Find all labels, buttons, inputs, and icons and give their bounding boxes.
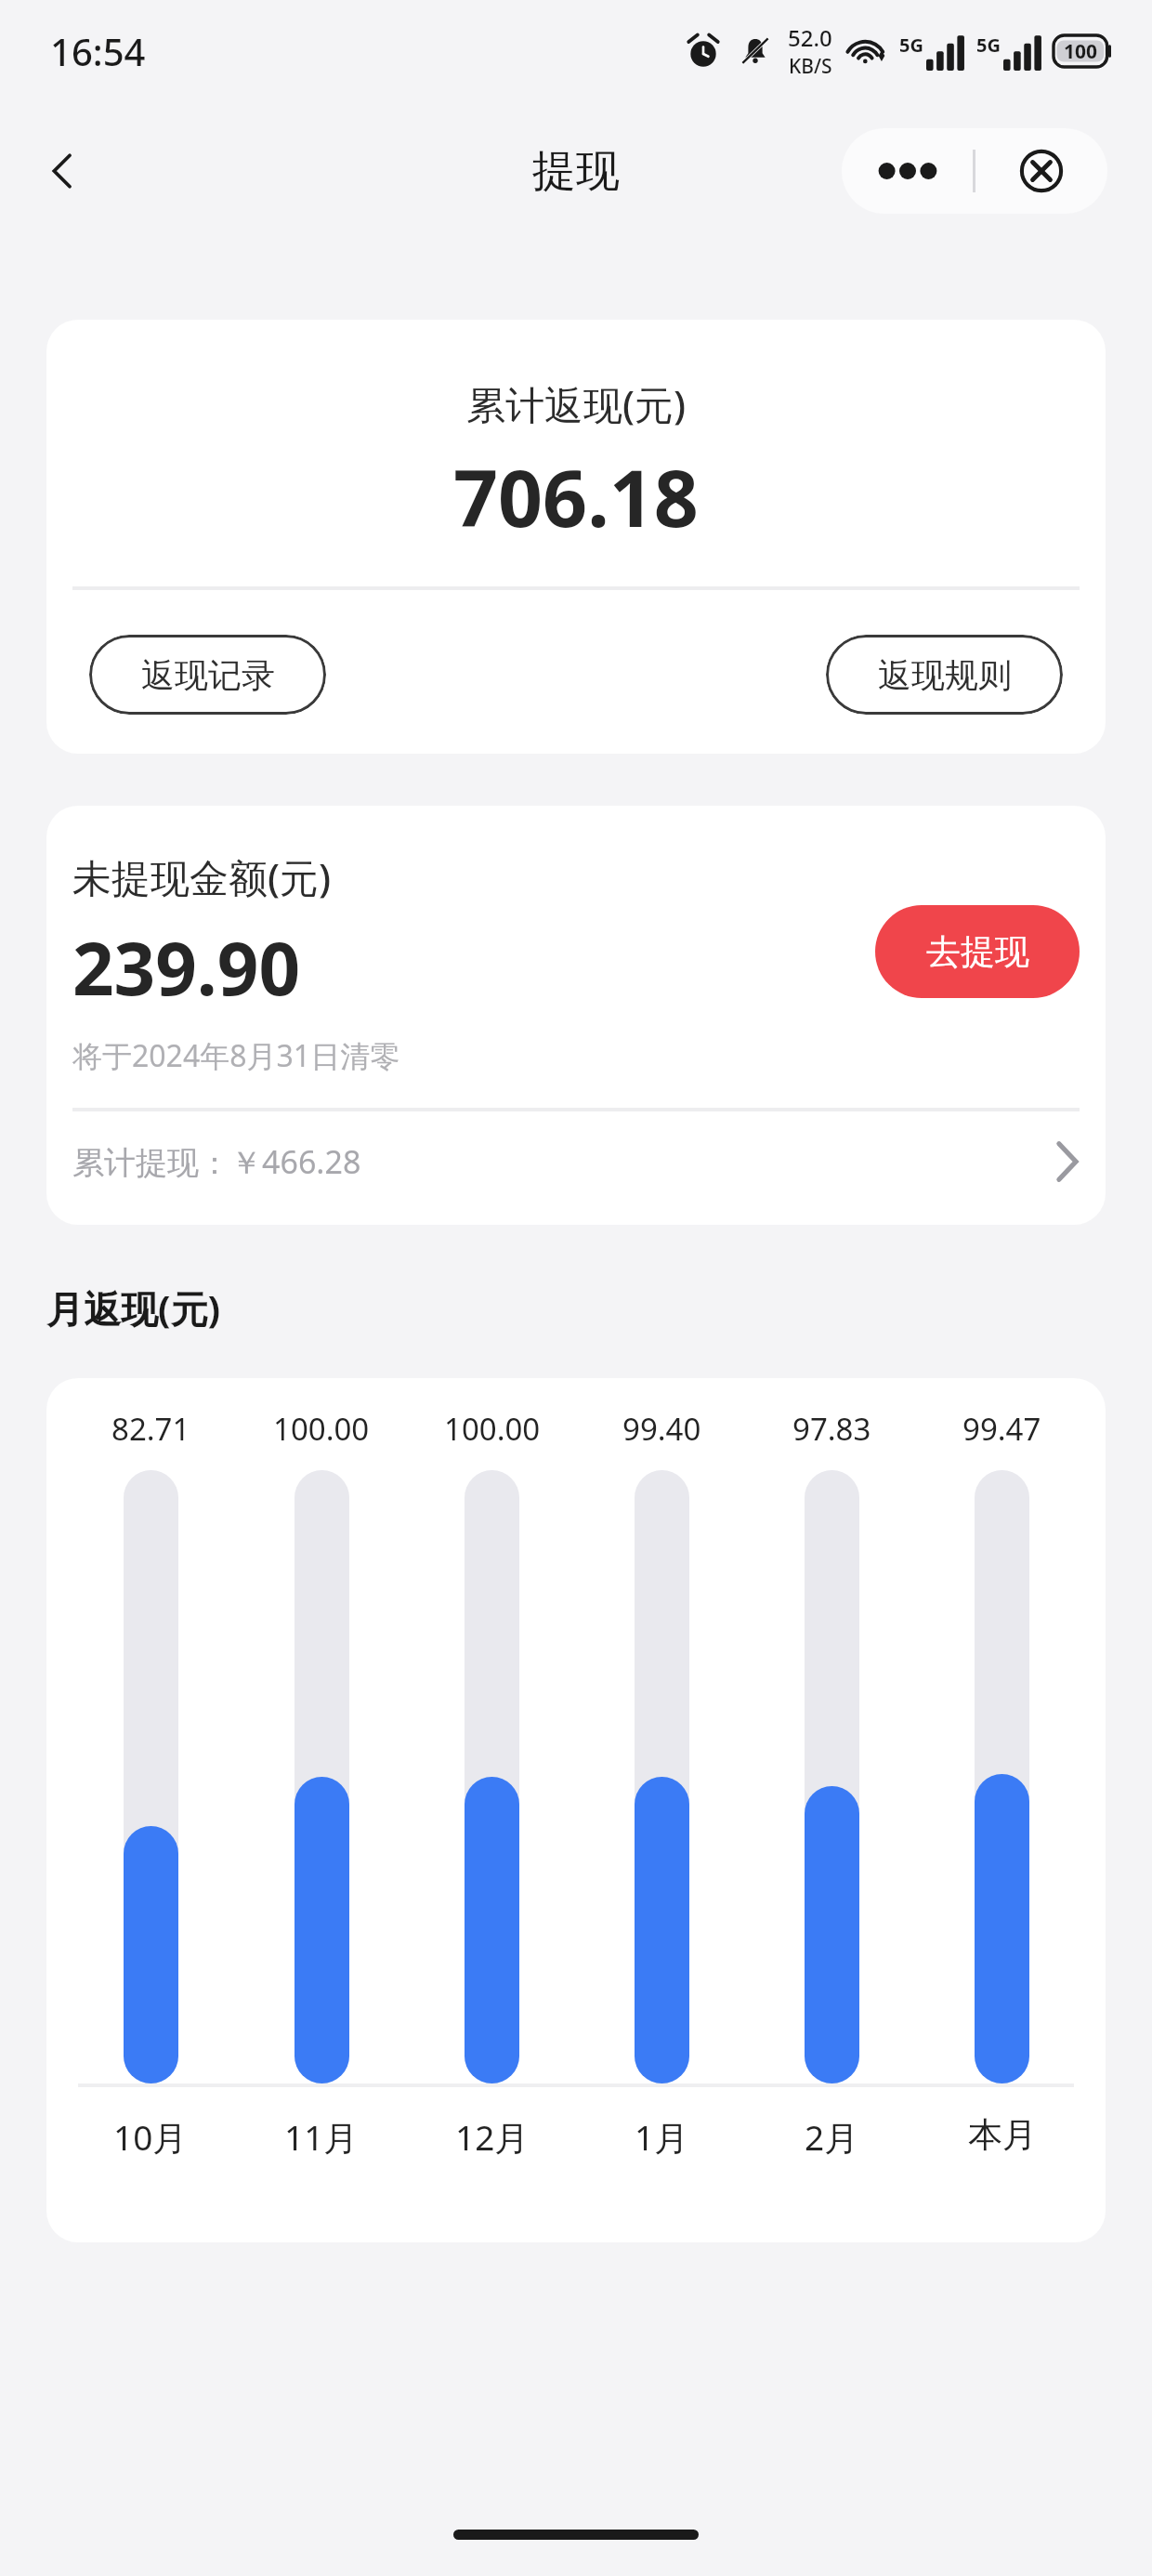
staticText: 239.90 xyxy=(72,918,300,1017)
staticText: 返现记录 xyxy=(141,654,275,696)
button[interactable] xyxy=(124,1470,178,2083)
button[interactable] xyxy=(295,1470,349,2083)
staticText: 5G xyxy=(976,33,1001,58)
button[interactable]: 返现规则 xyxy=(826,635,1063,715)
staticText: 97.83 xyxy=(792,1408,871,1450)
staticText: 10月 xyxy=(113,2113,188,2161)
button[interactable]: Back xyxy=(22,130,104,212)
button[interactable]: 累计提现：￥466.28 xyxy=(46,1111,1106,1212)
button[interactable] xyxy=(805,1470,859,2083)
button[interactable]: 去提现 xyxy=(875,905,1080,998)
staticText: KB/S xyxy=(789,53,832,80)
button[interactable] xyxy=(975,1470,1029,2083)
button[interactable]: More options xyxy=(842,128,973,214)
button[interactable]: Close xyxy=(975,128,1107,214)
staticText: 99.40 xyxy=(622,1408,701,1450)
staticText: 累计返现(元) xyxy=(466,377,687,430)
staticText: 11月 xyxy=(284,2113,359,2161)
staticText: 16:54 xyxy=(50,26,146,76)
staticText: 提现 xyxy=(532,144,620,199)
button[interactable] xyxy=(635,1470,689,2083)
staticText: 去提现 xyxy=(926,930,1029,974)
staticText: 1月 xyxy=(635,2113,689,2161)
button[interactable]: 返现记录 xyxy=(89,635,326,715)
button[interactable] xyxy=(465,1470,519,2083)
staticText: 100 xyxy=(1064,38,1098,65)
staticText: 本月 xyxy=(968,2113,1037,2157)
staticText: 82.71 xyxy=(111,1408,190,1450)
staticText: 未提现金额(元) xyxy=(72,850,332,903)
staticText: 706.18 xyxy=(453,443,699,549)
staticText: 100.00 xyxy=(273,1408,370,1450)
staticText: 将于2024年8月31日清零 xyxy=(72,1035,400,1076)
staticText: 52.0 xyxy=(788,22,832,53)
staticText: 月返现(元) xyxy=(46,1282,221,1334)
staticText: 12月 xyxy=(455,2113,530,2161)
staticText: 累计提现：￥466.28 xyxy=(72,1140,361,1183)
staticText: 返现规则 xyxy=(878,654,1012,696)
staticText: 2月 xyxy=(805,2113,859,2161)
staticText: 100.00 xyxy=(444,1408,541,1450)
staticText: 99.47 xyxy=(962,1408,1041,1450)
staticText: 5G xyxy=(899,33,923,58)
